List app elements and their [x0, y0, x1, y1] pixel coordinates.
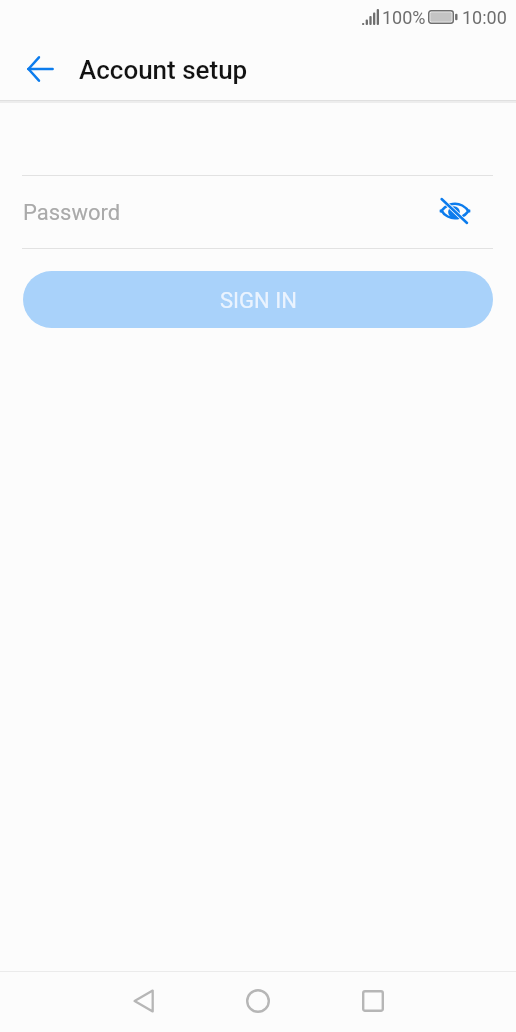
button[interactable]: Show password — [437, 193, 473, 229]
staticText: 10:00 — [462, 7, 507, 28]
button[interactable]: SIGN IN — [23, 271, 493, 328]
button[interactable]: Back — [12, 41, 68, 97]
button[interactable]: Home — [234, 977, 282, 1025]
staticText: Password — [23, 200, 121, 226]
staticText: SIGN IN — [220, 288, 297, 314]
button[interactable]: Back — [119, 977, 167, 1025]
staticText: 100% — [382, 7, 426, 28]
staticText: Account setup — [79, 55, 248, 85]
button[interactable]: Recents — [349, 977, 397, 1025]
